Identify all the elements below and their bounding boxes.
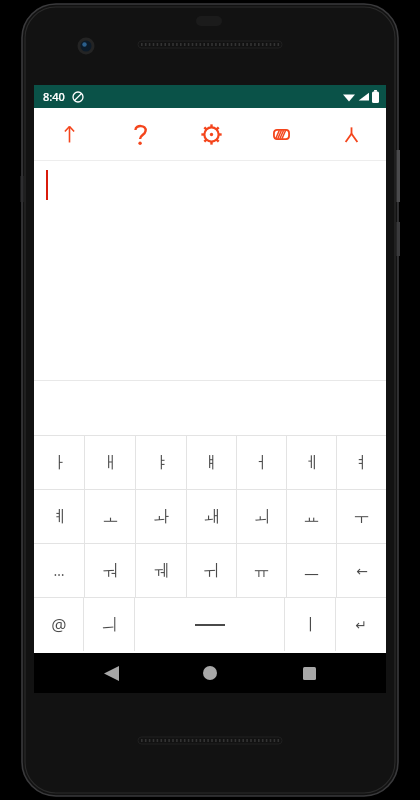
staticText: @ (51, 613, 67, 636)
button[interactable]: @ (34, 598, 83, 651)
staticText: ㅐ (102, 452, 119, 473)
staticText: ㅑ (153, 452, 170, 473)
staticText: ㅛ (303, 506, 320, 527)
staticText: ㅏ (51, 452, 68, 473)
staticText: ㅗ (102, 506, 119, 527)
staticText: ㅖ (51, 506, 68, 527)
staticText: ㅙ (203, 506, 220, 527)
staticText: ㅝ (102, 560, 119, 581)
button[interactable]: Settings (176, 108, 246, 160)
button[interactable]: ㅣ (285, 598, 335, 651)
button[interactable]: ㅢ (84, 598, 134, 651)
button[interactable] (135, 598, 284, 651)
button[interactable]: ㅠ (237, 544, 286, 597)
staticText: ㅜ (353, 506, 370, 527)
button[interactable]: ㅖ (34, 490, 84, 543)
staticText: ㅒ (203, 452, 220, 473)
staticText: ㅠ (253, 560, 270, 581)
button[interactable]: ㅑ (136, 436, 186, 489)
staticText: ㅓ (253, 452, 270, 473)
staticText: ㅣ (302, 614, 319, 635)
button[interactable]: Recents (287, 653, 331, 693)
staticText: ㅚ (253, 506, 270, 527)
staticText: 8:40 (43, 89, 65, 104)
button[interactable]: ㅙ (187, 490, 236, 543)
button[interactable]: ㅗ (85, 490, 135, 543)
button[interactable]: ← (337, 544, 386, 597)
button[interactable]: ㅝ (85, 544, 135, 597)
staticText: … (53, 561, 65, 580)
button[interactable]: Clear (246, 108, 316, 160)
button[interactable]: ㅞ (136, 544, 186, 597)
button[interactable]: ㅓ (237, 436, 286, 489)
button[interactable]: ㅡ (287, 544, 336, 597)
button[interactable]: Home (188, 653, 232, 693)
button[interactable]: ㅟ (187, 544, 236, 597)
button[interactable]: ㅚ (237, 490, 286, 543)
staticText: ㅔ (303, 452, 320, 473)
staticText: ㅢ (101, 614, 118, 635)
button[interactable]: ㅐ (85, 436, 135, 489)
button[interactable]: ㅔ (287, 436, 336, 489)
button[interactable]: Language (316, 108, 386, 160)
button[interactable]: ㅛ (287, 490, 336, 543)
button[interactable]: ㅕ (337, 436, 386, 489)
button[interactable]: Back (89, 653, 133, 693)
staticText: ㅡ (303, 560, 320, 581)
button[interactable]: ㅜ (337, 490, 386, 543)
button[interactable]: … (34, 544, 84, 597)
staticText: ㅕ (353, 452, 370, 473)
button[interactable]: ㅏ (34, 436, 84, 489)
button[interactable]: ㅒ (187, 436, 236, 489)
staticText: ㅘ (153, 506, 170, 527)
staticText: ↵ (355, 617, 367, 633)
button[interactable]: Help (105, 108, 176, 160)
staticText: ㅟ (203, 560, 220, 581)
staticText: ㅞ (153, 560, 170, 581)
button[interactable]: ㅘ (136, 490, 186, 543)
button[interactable]: ↵ (336, 598, 386, 651)
button[interactable]: Shift / up (34, 108, 105, 160)
staticText: ← (356, 563, 368, 579)
